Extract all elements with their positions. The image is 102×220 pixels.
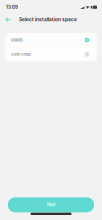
button[interactable]: Other Areas (5, 47, 97, 61)
staticText: Other Areas (11, 52, 31, 57)
staticText: Indoors (11, 38, 23, 42)
button[interactable]: Indoors (5, 33, 97, 47)
button[interactable]: Next (8, 197, 94, 212)
staticText: Select installation space (19, 17, 77, 22)
staticText: 13:09 (6, 4, 18, 10)
staticText: Next (47, 202, 55, 207)
button[interactable]: Back (3, 15, 12, 24)
